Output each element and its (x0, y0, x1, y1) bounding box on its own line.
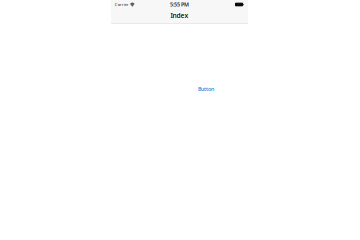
staticText: Button (198, 85, 214, 93)
staticText: 5:55 PM (170, 1, 189, 8)
staticText: Index (170, 11, 188, 20)
button[interactable]: Button (195, 85, 217, 93)
staticText: Carrier (115, 2, 129, 7)
